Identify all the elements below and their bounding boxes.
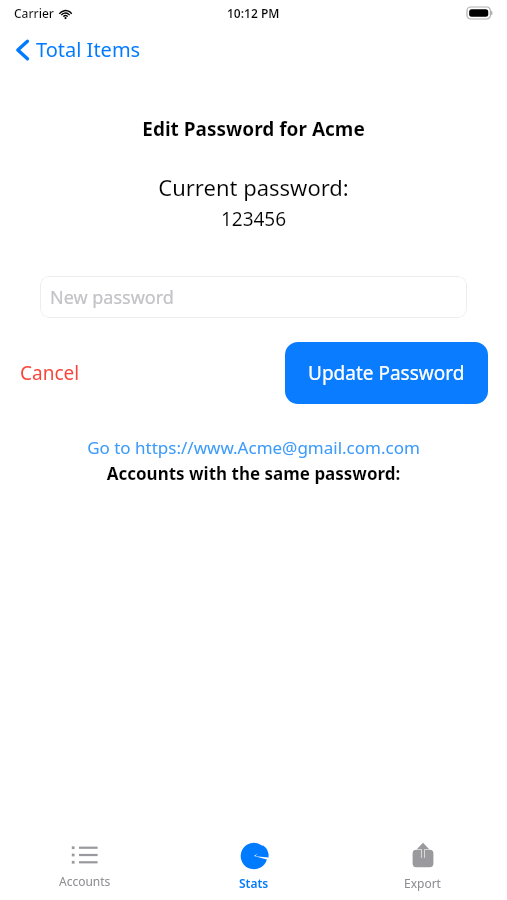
button[interactable]: Update Password	[285, 342, 488, 404]
staticText: Total Items	[36, 36, 141, 63]
staticText: Cancel	[20, 360, 80, 386]
staticText: Export	[404, 875, 441, 891]
staticText: Accounts	[59, 873, 111, 889]
staticText: 10:12 PM	[227, 5, 280, 21]
staticText: Update Password	[308, 360, 465, 386]
staticText: Edit Password for Acme	[0, 116, 507, 142]
staticText: Stats	[239, 875, 269, 891]
button[interactable]: Export	[338, 834, 507, 891]
button[interactable]: Stats	[169, 834, 338, 891]
button[interactable]: Cancel	[14, 354, 86, 392]
staticText: Accounts with the same password:	[0, 462, 507, 485]
button[interactable]: New password	[40, 276, 467, 318]
staticText: New password	[50, 285, 174, 310]
button[interactable]: Go to https://www.Acme@gmail.com.com	[0, 436, 507, 459]
staticText: 123456	[0, 206, 507, 232]
staticText: Current password:	[0, 172, 507, 202]
button[interactable]: Accounts	[0, 834, 169, 889]
button[interactable]: Total Items	[10, 32, 147, 67]
staticText: Carrier	[14, 5, 54, 21]
